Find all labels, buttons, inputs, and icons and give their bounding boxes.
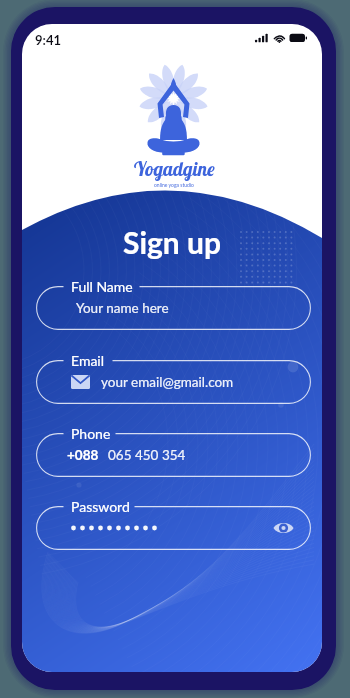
button[interactable]: Show password xyxy=(36,506,311,550)
staticText: Full Name xyxy=(71,278,133,295)
button[interactable]: Show password xyxy=(273,521,294,535)
staticText: +088 xyxy=(67,447,99,463)
staticText: Phone xyxy=(71,425,111,442)
button[interactable]: your email@gmail.com xyxy=(36,360,311,404)
staticText: Sign up xyxy=(123,224,222,260)
staticText: 9:41 xyxy=(35,32,61,48)
staticText: Yogadgine xyxy=(133,157,215,181)
staticText: online yoga studio xyxy=(154,182,194,188)
button[interactable]: Your name here xyxy=(36,286,311,330)
staticText: Email xyxy=(71,352,105,369)
staticText: Your name here xyxy=(76,300,169,316)
staticText: your email@gmail.com xyxy=(101,374,234,390)
button[interactable]: +088 xyxy=(36,433,311,477)
staticText: 065 450 354 xyxy=(108,447,186,463)
staticText: Password xyxy=(71,498,130,515)
